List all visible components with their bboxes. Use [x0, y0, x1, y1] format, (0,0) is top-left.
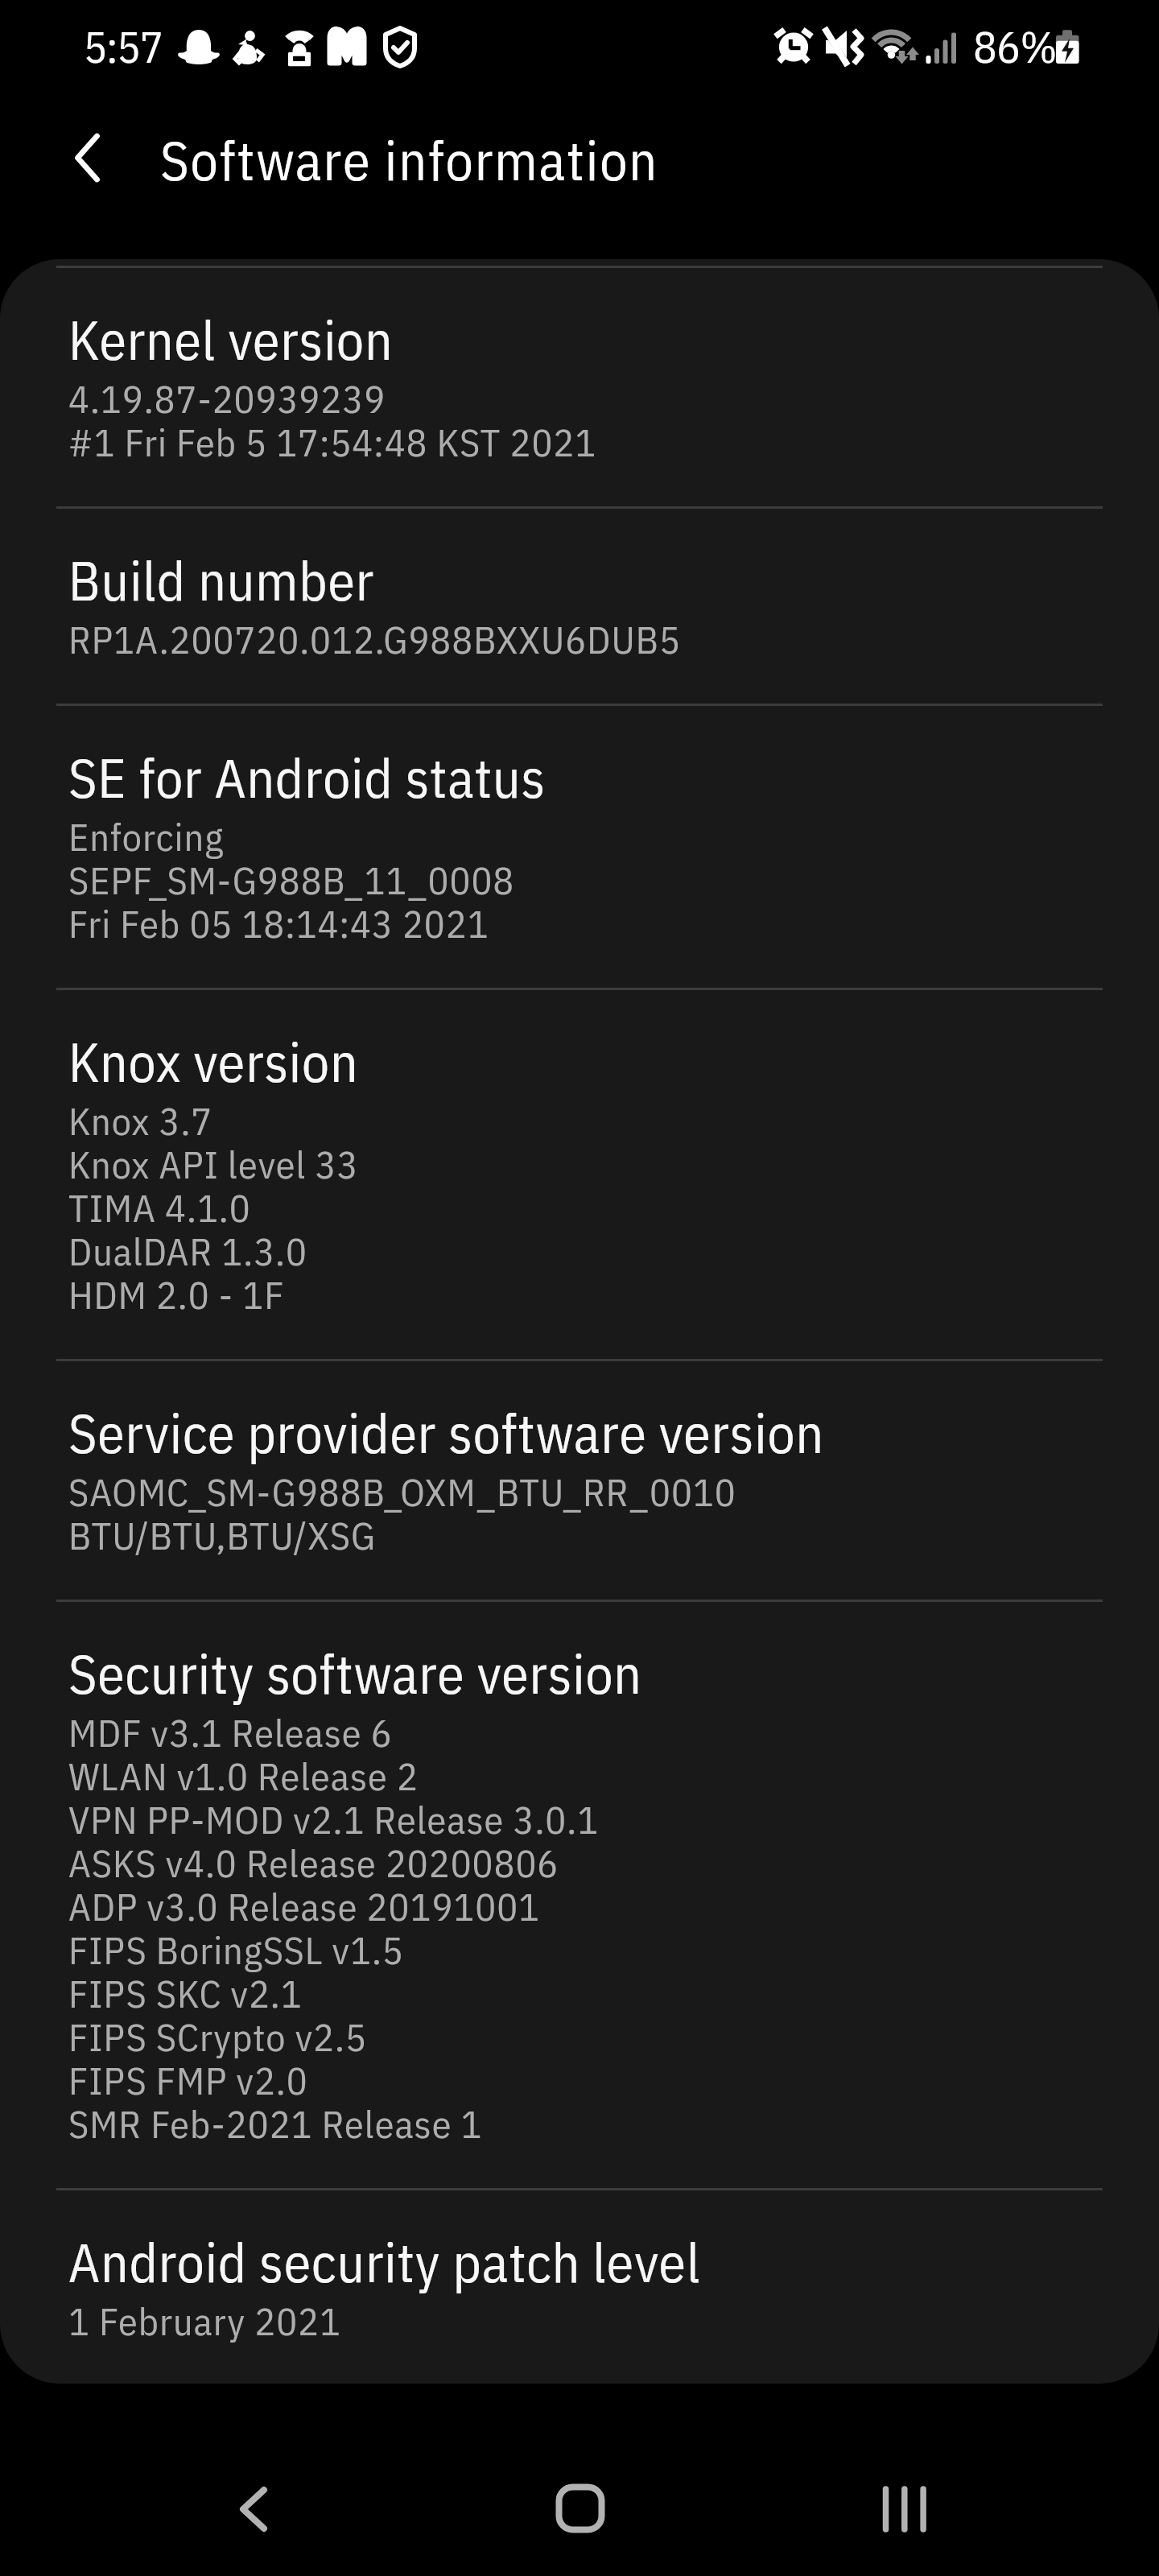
staticText: Android security patch level — [68, 2227, 701, 2297]
staticText: Security software version — [68, 1638, 642, 1709]
staticText: FIPS FMP v2.0 — [68, 2055, 308, 2105]
staticText: DualDAR 1.3.0 — [68, 1226, 307, 1276]
staticText: Service provider software version — [68, 1397, 824, 1468]
button[interactable] — [0, 1600, 1159, 2189]
staticText: Knox 3.7 — [68, 1096, 213, 1146]
staticText: TIMA 4.1.0 — [68, 1183, 251, 1232]
button[interactable]: Home — [533, 2461, 628, 2556]
staticText: 1 February 2021 — [68, 2296, 341, 2346]
staticText: ADP v3.0 Release 20191001 — [68, 1881, 540, 1931]
button[interactable] — [0, 507, 1159, 704]
staticText: HDM 2.0 - 1F — [68, 1269, 285, 1319]
button[interactable]: Navigate up — [31, 101, 143, 214]
staticText: Fri Feb 05 18:14:43 2021 — [68, 898, 489, 948]
staticText: VPN PP-MOD v2.1 Release 3.0.1 — [68, 1794, 600, 1844]
button[interactable] — [0, 1360, 1159, 1600]
staticText: FIPS SCrypto v2.5 — [68, 2012, 367, 2062]
staticText: Knox version — [68, 1026, 359, 1097]
staticText: Enforcing — [68, 811, 225, 861]
button[interactable]: Recent apps — [857, 2461, 952, 2556]
staticText: ASKS v4.0 Release 20200806 — [68, 1838, 559, 1888]
button[interactable] — [0, 266, 1159, 507]
staticText: Build number — [68, 545, 374, 616]
staticText: BTU/BTU,BTU/XSG — [68, 1510, 377, 1560]
button[interactable] — [0, 704, 1159, 989]
staticText: Software information — [160, 124, 659, 195]
staticText: FIPS SKC v2.1 — [68, 1968, 303, 2018]
staticText: Kernel version — [68, 304, 394, 375]
staticText: WLAN v1.0 Release 2 — [68, 1751, 419, 1801]
staticText: SMR Feb-2021 Release 1 — [68, 2099, 483, 2149]
button[interactable]: Back — [207, 2461, 302, 2556]
staticText: 4.19.87-20939239 — [68, 374, 386, 423]
button[interactable] — [0, 989, 1159, 1360]
staticText: FIPS BoringSSL v1.5 — [68, 1925, 404, 1975]
staticText: SE for Android status — [68, 742, 547, 813]
staticText: 5:57 — [84, 19, 163, 75]
staticText: SAOMC_SM-G988B_OXM_BTU_RR_0010 — [68, 1467, 736, 1517]
staticText: Knox API level 33 — [68, 1139, 359, 1189]
staticText: SEPF_SM-G988B_11_0008 — [68, 855, 515, 905]
staticText: RP1A.200720.012.G988BXXU6DUB5 — [68, 614, 681, 664]
staticText: 86% — [973, 18, 1058, 76]
staticText: MDF v3.1 Release 6 — [68, 1707, 393, 1757]
button[interactable] — [0, 2189, 1159, 2384]
staticText: #1 Fri Feb 5 17:54:48 KST 2021 — [68, 417, 597, 467]
